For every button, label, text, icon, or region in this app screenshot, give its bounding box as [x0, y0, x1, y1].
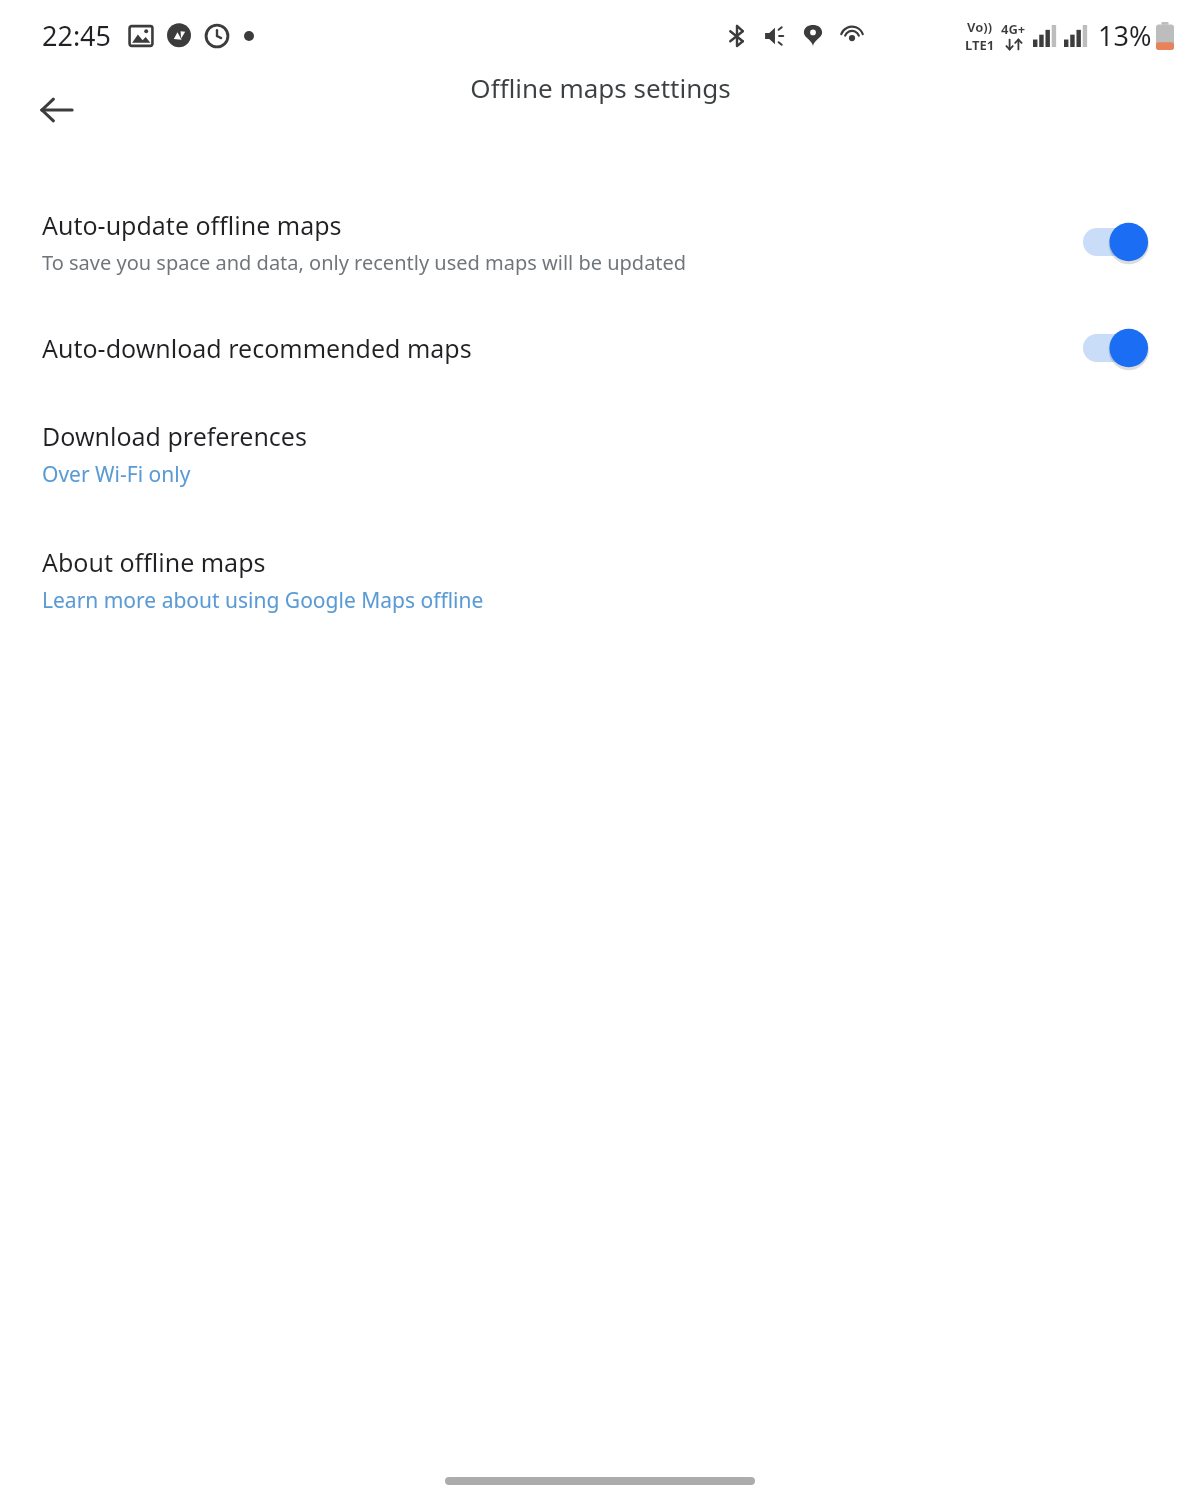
- staticText: About offline maps: [42, 545, 266, 579]
- staticText: To save you space and data, only recentl…: [42, 249, 687, 276]
- button[interactable]: Auto-update offline maps: [0, 208, 1200, 276]
- staticText: 22:45: [42, 17, 112, 54]
- staticText: Download preferences: [42, 419, 307, 453]
- staticText: Auto-download recommended maps: [42, 331, 472, 365]
- staticText: Auto-update offline maps: [42, 208, 342, 242]
- button[interactable]: Download preferences: [0, 419, 1200, 489]
- staticText: Offline maps settings: [470, 70, 731, 105]
- button[interactable]: About offline maps: [0, 545, 1200, 615]
- staticText: Over Wi-Fi only: [42, 460, 191, 489]
- button[interactable]: Back: [27, 80, 87, 140]
- staticText: 4G+: [1001, 20, 1026, 38]
- button[interactable]: Auto-download recommended maps: [0, 326, 1200, 370]
- staticText: Vo)): [967, 18, 993, 36]
- staticText: 13%: [1098, 17, 1152, 54]
- staticText: Learn more about using Google Maps offli…: [42, 586, 484, 615]
- staticText: LTE1: [965, 36, 995, 54]
